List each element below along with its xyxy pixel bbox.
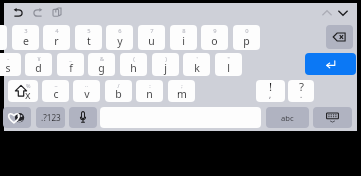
button[interactable]: 7	[138, 25, 165, 50]
button[interactable]: ¥	[25, 53, 52, 76]
staticText: j	[164, 61, 167, 75]
staticText: 6	[118, 27, 122, 35]
button[interactable]	[0, 25, 7, 50]
button[interactable]: .?123	[36, 107, 65, 128]
staticText: f	[69, 61, 73, 75]
button[interactable]: "	[215, 53, 242, 76]
button[interactable]: ;	[168, 80, 195, 102]
button[interactable]: Backspace	[326, 25, 353, 49]
staticText: e	[23, 34, 29, 48]
staticText: :	[149, 82, 151, 89]
button[interactable]: ?	[288, 80, 314, 102]
staticText: 5	[87, 27, 91, 35]
staticText: 4	[55, 27, 59, 35]
staticText: r	[54, 34, 59, 48]
staticText: /	[117, 82, 120, 89]
staticText: ,	[269, 89, 272, 100]
button[interactable]: Switch keyboard	[313, 107, 352, 128]
button[interactable]: Enter	[305, 53, 356, 75]
staticText: t	[87, 34, 91, 48]
staticText: i	[182, 34, 185, 48]
staticText: 7	[150, 27, 154, 35]
button[interactable]: ··	[73, 80, 100, 102]
button[interactable]: 0	[233, 25, 260, 50]
button[interactable]: :	[136, 80, 163, 102]
staticText: .	[300, 89, 303, 100]
staticText: k	[194, 61, 200, 75]
staticText: l	[227, 61, 230, 75]
staticText: 8	[182, 27, 186, 35]
staticText: .?123	[41, 112, 61, 123]
button[interactable]: 8	[170, 25, 197, 50]
button[interactable]: -	[0, 53, 21, 76]
button[interactable]: &	[88, 53, 115, 76]
button[interactable]: Copy	[49, 5, 65, 21]
staticText: x	[25, 88, 31, 102]
staticText: %	[26, 82, 31, 89]
staticText: ;	[181, 82, 183, 89]
staticText: c	[53, 87, 59, 101]
staticText: 3	[24, 27, 28, 35]
staticText: m	[177, 87, 187, 101]
button[interactable]: Shift	[8, 80, 38, 102]
staticText: ··	[85, 82, 88, 89]
staticText: u	[148, 34, 155, 48]
staticText: v	[84, 87, 90, 101]
staticText: p	[243, 34, 250, 48]
staticText: o	[211, 34, 218, 48]
button[interactable]: 4	[43, 25, 70, 50]
staticText: 0	[245, 27, 249, 35]
button[interactable]: /	[105, 80, 132, 102]
button[interactable]: !	[256, 80, 285, 102]
staticText: ¥	[37, 55, 41, 62]
staticText: (	[133, 55, 135, 62]
button[interactable]: abc	[266, 107, 309, 128]
staticText: b	[115, 87, 122, 101]
button[interactable]: Emoji	[3, 107, 31, 128]
button[interactable]: '	[183, 53, 210, 76]
button[interactable]: 9	[201, 25, 228, 50]
staticText: &	[100, 55, 104, 62]
staticText: -	[7, 55, 9, 62]
staticText: '	[196, 55, 198, 62]
staticText: ~	[54, 82, 58, 89]
button[interactable]: Voice input	[69, 107, 97, 128]
button[interactable]: 6	[106, 25, 133, 50]
staticText: abc	[281, 113, 294, 123]
staticText: !	[269, 80, 273, 95]
button[interactable]: Next suggestion	[335, 5, 351, 21]
button[interactable]: ~	[42, 80, 69, 102]
button[interactable]: 5	[75, 25, 102, 50]
staticText: g	[98, 61, 105, 75]
button[interactable]: _	[57, 53, 84, 76]
staticText: h	[130, 61, 137, 75]
button[interactable]: (	[120, 53, 147, 76]
staticText: )	[165, 55, 167, 62]
staticText: y	[117, 34, 123, 48]
staticText: "	[227, 55, 230, 62]
staticText: n	[146, 87, 153, 101]
button[interactable]: Redo	[30, 5, 46, 21]
button[interactable]: 3	[12, 25, 39, 50]
button[interactable]: )	[152, 53, 179, 76]
staticText: _	[69, 55, 72, 62]
staticText: d	[35, 61, 42, 75]
staticText: s	[5, 61, 11, 75]
staticText: 9	[213, 27, 217, 35]
button[interactable]: Previous suggestion	[319, 5, 335, 21]
staticText: ?	[299, 80, 304, 95]
button[interactable]: Undo	[10, 5, 26, 21]
